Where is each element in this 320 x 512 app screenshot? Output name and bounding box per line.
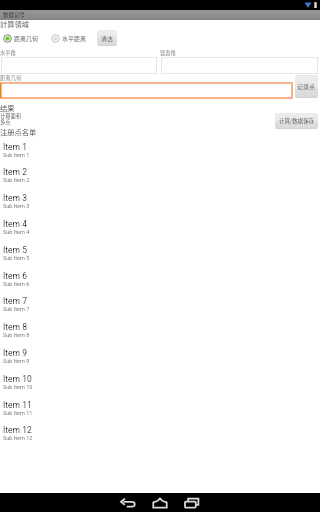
button[interactable]: Home [146,493,174,512]
button[interactable]: Recents [178,493,206,512]
staticText: Item 12 [3,425,32,435]
staticText: 结果 [0,103,15,113]
staticText: 清洁 [101,34,114,43]
button[interactable] [161,57,318,74]
staticText: Item 1 [3,142,27,152]
button[interactable]: Item 2 [0,167,320,193]
staticText: Item 11 [3,400,32,410]
button[interactable]: Item 4 [0,219,320,245]
staticText: Sub Item 6 [3,281,30,287]
staticText: Item 4 [3,219,27,229]
staticText: Sub Item 2 [3,177,30,183]
staticText: Sub Item 5 [3,255,30,261]
button[interactable]: 清洁 [97,30,117,46]
staticText: Item 8 [3,322,27,332]
staticText: 记录点 [297,82,316,91]
button[interactable]: 距离几何 [2,33,39,44]
staticText: 计算面积 [0,112,22,120]
staticText: Sub Item 1 [3,152,30,158]
button[interactable]: Item 9 [0,348,320,374]
staticText: Item 9 [3,348,27,358]
staticText: 距离几何 [0,74,22,82]
staticText: 注册点名单 [0,127,37,137]
button[interactable]: 水平距离 [50,33,87,44]
staticText: Sub Item 10 [3,384,33,390]
button[interactable]: Back [114,493,142,512]
staticText: Sub Item 8 [3,332,30,338]
staticText: 計算領域 [0,19,30,29]
button[interactable]: 记录点 [295,75,318,98]
staticText: Sub Item 11 [3,410,33,416]
staticText: 数据记号 [3,11,26,19]
button[interactable]: Item 12 [0,425,320,451]
button[interactable]: Item 1 [0,142,320,168]
staticText: Sub Item 12 [3,435,33,441]
staticText: Item 7 [3,296,27,306]
staticText: Sub Item 9 [3,358,30,364]
staticText: Item 2 [3,167,27,177]
staticText: Item 10 [3,374,32,384]
staticText: 距离几何 [14,34,39,43]
staticText: 竖直角 [160,49,176,57]
button[interactable] [1,57,157,74]
button[interactable]: Item 6 [0,271,320,297]
button[interactable]: Item 11 [0,400,320,426]
staticText: Item 6 [3,271,27,281]
button[interactable]: 计算/数据保存 [275,113,318,129]
staticText: Sub Item 4 [3,229,30,235]
staticText: 计算/数据保存 [279,117,315,125]
button[interactable]: Item 10 [0,374,320,400]
staticText: Item 5 [3,245,27,255]
button[interactable] [0,82,293,99]
staticText: Item 3 [3,193,27,203]
staticText: Sub Item 3 [3,203,30,209]
staticText: 水平距离 [62,34,87,43]
staticText: 多点 [0,118,11,126]
button[interactable]: Item 7 [0,296,320,322]
staticText: Sub Item 7 [3,306,30,312]
staticText: 水平角 [0,49,16,57]
button[interactable]: Item 8 [0,322,320,348]
button[interactable]: Item 5 [0,245,320,271]
button[interactable]: Item 3 [0,193,320,219]
